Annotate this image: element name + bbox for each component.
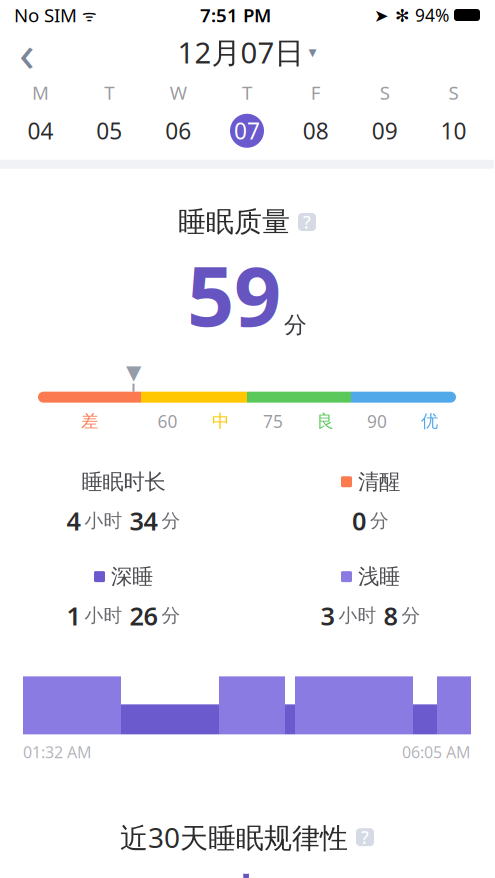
staticText: 差: [81, 410, 98, 432]
staticText: ?: [361, 826, 369, 849]
staticText: 75: [263, 410, 283, 433]
staticText: 3: [320, 599, 334, 632]
staticText: 09: [372, 116, 398, 146]
staticText: 4: [66, 504, 80, 537]
staticText: W: [170, 80, 187, 105]
staticText: No SIM: [14, 3, 77, 27]
button[interactable]: 12月07日: [167, 27, 326, 76]
staticText: 深睡: [111, 563, 153, 590]
button[interactable]: Help: [356, 828, 374, 846]
staticText: ➤ ✻ 94%: [374, 3, 449, 26]
staticText: 8: [383, 599, 397, 632]
staticText: T: [242, 80, 252, 105]
staticText: 小时: [84, 604, 122, 627]
staticText: M: [32, 80, 49, 105]
button[interactable]: W: [144, 80, 213, 148]
staticText: F: [311, 80, 321, 105]
staticText: 中: [212, 410, 229, 432]
staticText: ᯤ: [82, 4, 97, 26]
staticText: 优: [421, 410, 438, 432]
staticText: 06: [165, 116, 191, 146]
staticText: 10: [441, 116, 467, 146]
button[interactable]: F: [281, 80, 350, 148]
staticText: 05: [96, 116, 122, 146]
staticText: 清醒: [358, 469, 400, 495]
staticText: ▼: [126, 361, 141, 384]
button[interactable]: Back: [0, 30, 54, 74]
button[interactable]: T: [75, 80, 144, 148]
staticText: 1: [66, 599, 80, 632]
staticText: 睡眠质量: [178, 205, 290, 239]
staticText: 分: [284, 311, 307, 339]
staticText: 分: [370, 509, 389, 532]
staticText: ▾: [308, 43, 316, 61]
button[interactable]: S: [419, 80, 488, 148]
staticText: 60: [157, 410, 177, 433]
staticText: 分: [401, 604, 420, 627]
staticText: T: [104, 80, 114, 105]
staticText: 34: [129, 504, 157, 537]
staticText: 04: [27, 116, 53, 146]
staticText: ‹: [19, 18, 35, 86]
staticText: 浅睡: [358, 563, 400, 590]
staticText: 12月07日: [177, 32, 303, 71]
staticText: S: [449, 80, 459, 105]
staticText: 0: [352, 504, 366, 537]
staticText: 近30天睡眠规律性: [120, 819, 348, 856]
staticText: 90: [367, 410, 387, 433]
staticText: 08: [303, 116, 329, 146]
staticText: 59: [187, 239, 281, 349]
staticText: S: [380, 80, 390, 105]
staticText: ?: [303, 210, 311, 233]
staticText: 睡眠时长: [81, 469, 165, 495]
staticText: 26: [129, 599, 157, 632]
staticText: 7:51 PM: [200, 3, 271, 27]
staticText: 01:32 AM: [23, 741, 92, 763]
staticText: 小时: [338, 604, 376, 627]
staticText: 分: [161, 604, 180, 627]
button[interactable]: T: [213, 80, 281, 148]
staticText: 良: [316, 410, 333, 432]
staticText: 中: [223, 870, 271, 878]
button[interactable]: M: [6, 80, 75, 148]
staticText: 分: [161, 509, 180, 532]
staticText: 06:05 AM: [402, 741, 471, 763]
staticText: 小时: [84, 509, 122, 532]
button[interactable]: S: [350, 80, 419, 148]
staticText: 07: [234, 116, 260, 146]
button[interactable]: Help: [298, 213, 316, 231]
